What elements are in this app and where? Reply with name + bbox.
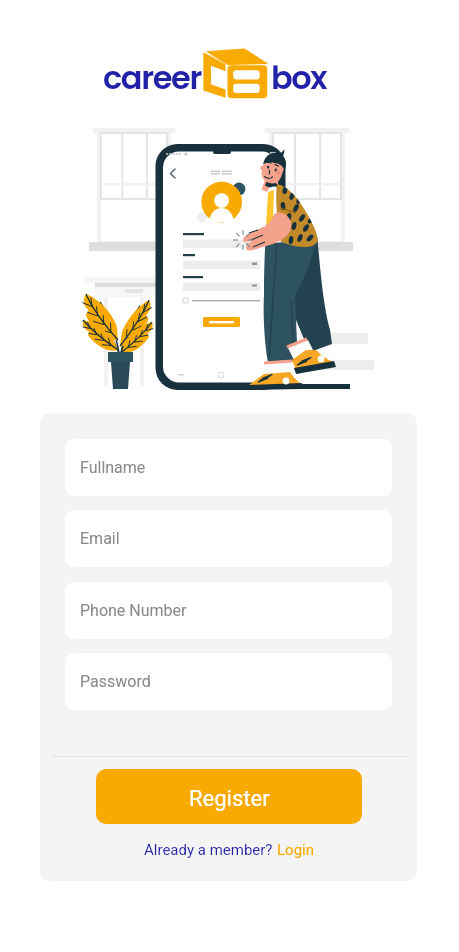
button[interactable]: Phone Number [65, 582, 392, 639]
button[interactable]: Email [65, 510, 392, 567]
button[interactable]: Password [65, 653, 392, 710]
staticText: career [103, 55, 201, 100]
staticText: Fullname [80, 458, 146, 477]
button[interactable]: Login [277, 841, 314, 859]
staticText: Password [80, 672, 151, 691]
button[interactable]: Register [96, 769, 362, 824]
staticText: Register [189, 786, 270, 812]
button[interactable]: Fullname [65, 439, 392, 496]
staticText: Already a member? [144, 841, 277, 859]
staticText: Phone Number [80, 601, 187, 620]
staticText: box [271, 55, 327, 100]
staticText: Email [80, 529, 120, 548]
